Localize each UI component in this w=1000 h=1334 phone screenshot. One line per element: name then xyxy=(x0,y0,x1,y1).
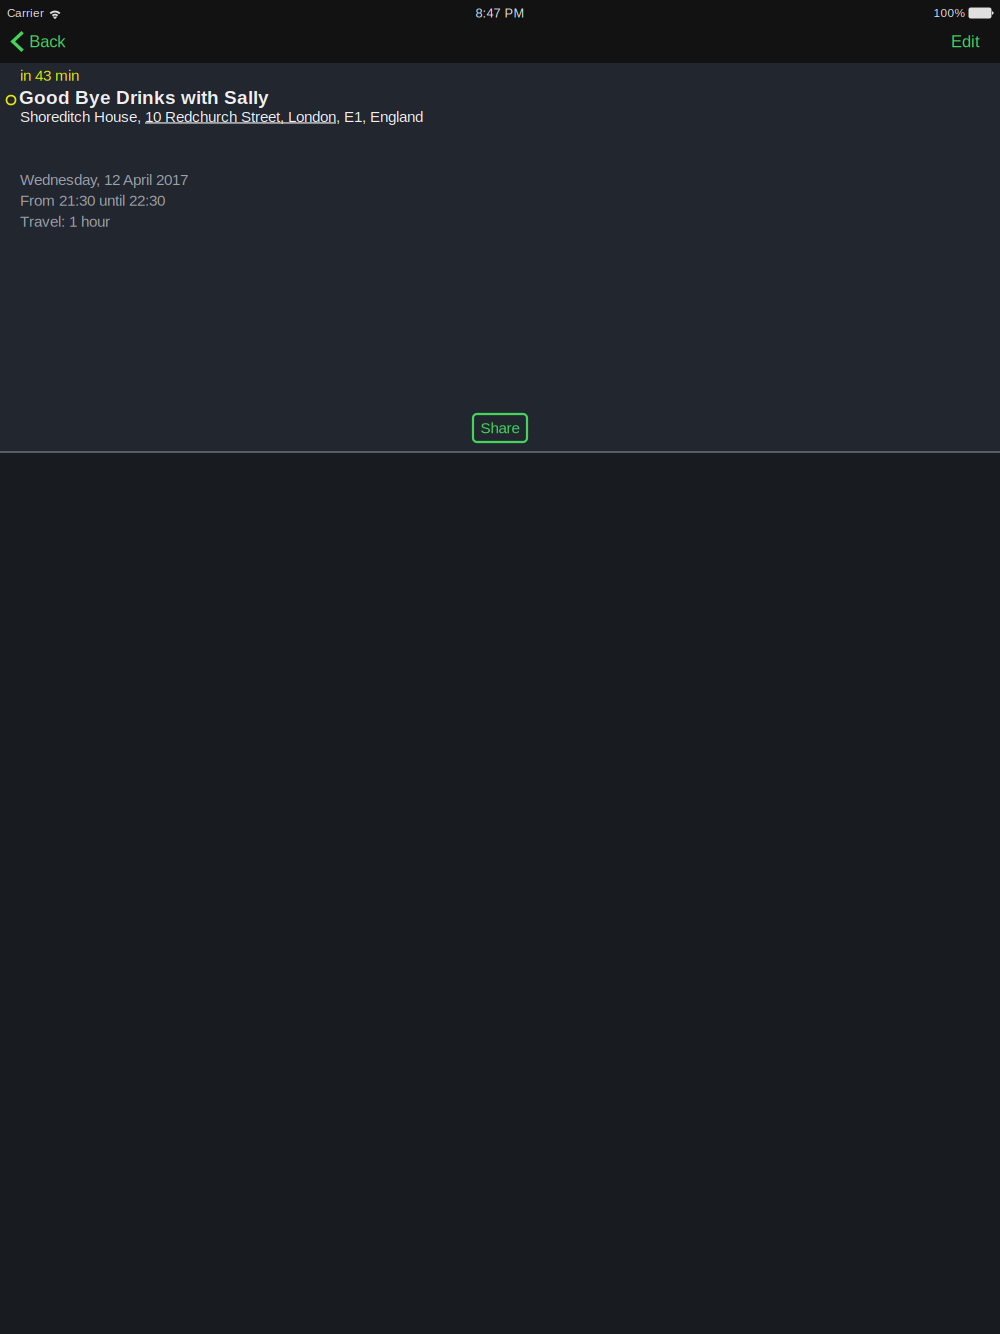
staticText: Good Bye Drinks with Sally xyxy=(19,87,269,108)
staticText: 8:47 PM xyxy=(475,6,524,20)
staticText: Travel: 1 hour xyxy=(20,213,110,230)
staticText: Back xyxy=(29,32,65,51)
staticText: Edit xyxy=(951,32,980,51)
staticText: Wednesday, 12 April 2017 xyxy=(20,171,188,188)
staticText: Share xyxy=(480,419,519,436)
staticText: Carrier xyxy=(7,6,44,19)
button[interactable]: Share xyxy=(473,414,527,442)
staticText: in 43 min xyxy=(20,67,79,84)
staticText: 100% xyxy=(933,6,964,19)
staticText: Shoreditch House, 10 Redchurch Street, L… xyxy=(20,108,423,125)
staticText: From 21:30 until 22:30 xyxy=(20,192,165,209)
button[interactable]: Edit xyxy=(931,26,1000,63)
button[interactable]: Back xyxy=(0,26,75,63)
